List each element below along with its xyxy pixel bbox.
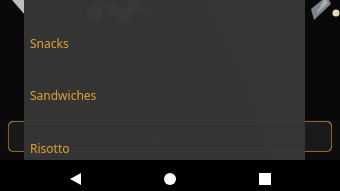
button[interactable]: Snacks [24, 17, 305, 69]
button[interactable]: Sandwiches [24, 69, 305, 121]
staticText: Snacks [30, 35, 69, 51]
staticText: Risotto [30, 140, 70, 156]
button[interactable]: SHOW RECIPE [8, 121, 332, 152]
staticText: Sandwiches [30, 87, 97, 103]
button[interactable]: Recents [241, 160, 289, 191]
button[interactable]: Risotto [24, 122, 305, 174]
button[interactable]: Home [146, 160, 194, 191]
button[interactable]: Back [51, 160, 99, 191]
